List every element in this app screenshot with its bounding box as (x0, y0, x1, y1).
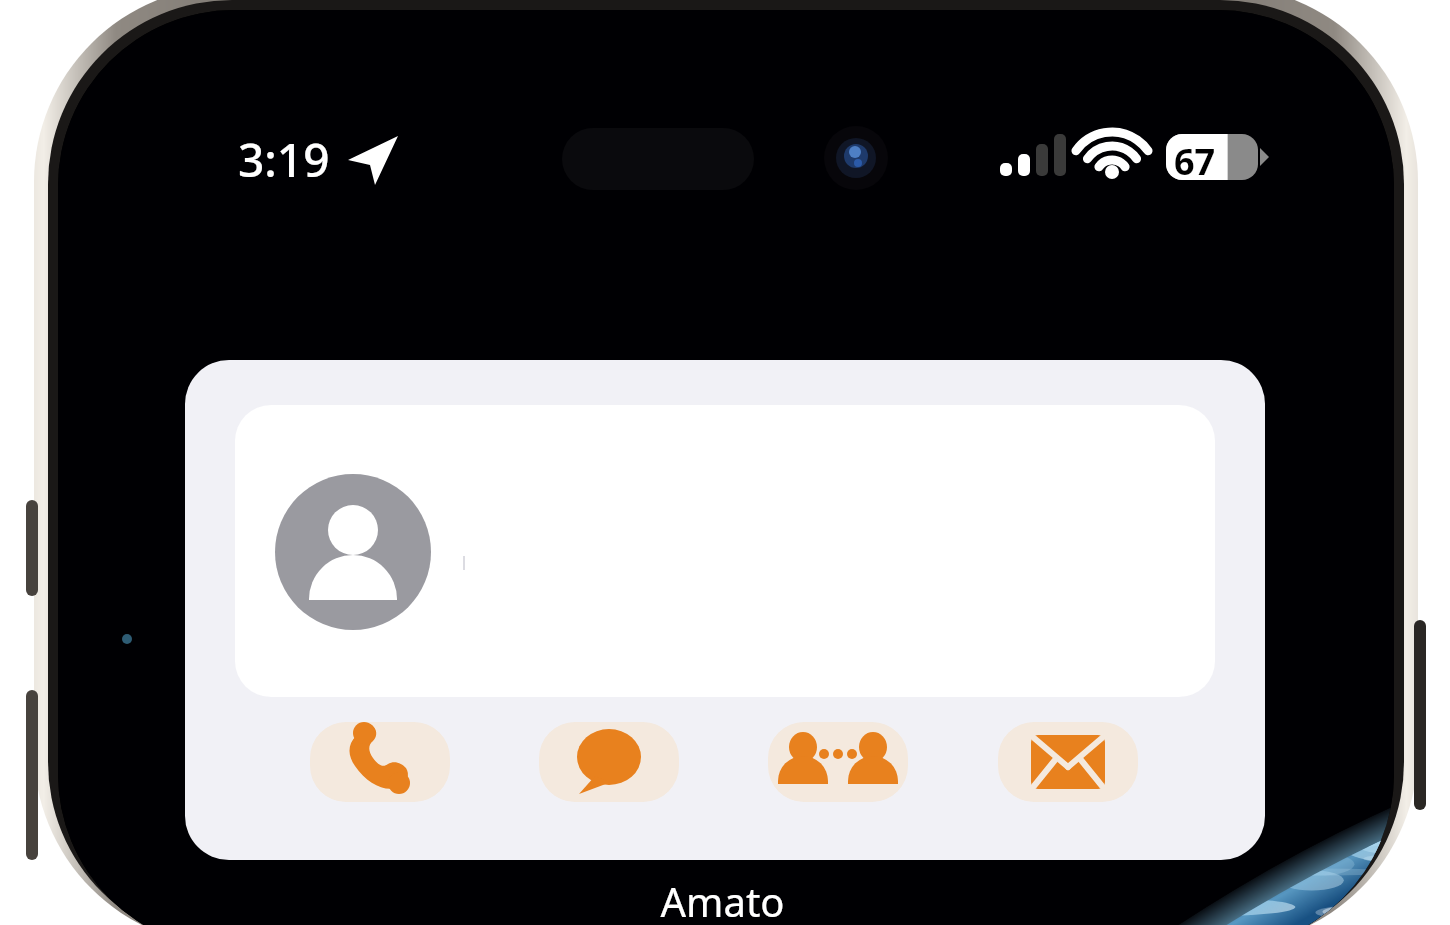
button[interactable]: Contact Amato (235, 405, 1215, 697)
button[interactable]: Meet (768, 722, 908, 802)
button[interactable]: Mail (998, 722, 1138, 802)
button[interactable]: Call (310, 722, 450, 802)
button[interactable]: Message (539, 722, 679, 802)
